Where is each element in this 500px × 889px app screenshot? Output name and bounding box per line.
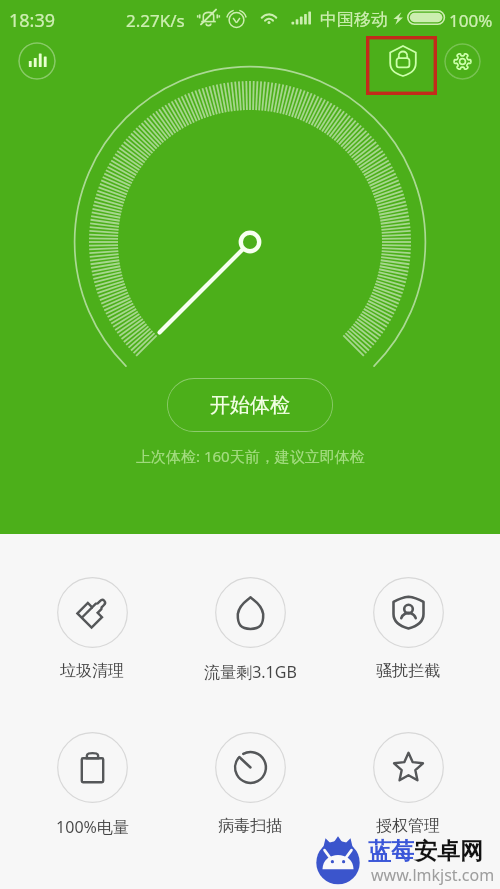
staticText: 18:39	[9, 8, 56, 33]
staticText: 垃圾清理	[60, 661, 124, 681]
staticText: 流量剩3.1GB	[204, 661, 297, 683]
staticText: 100%电量	[56, 816, 129, 838]
button[interactable]: 流量剩3.1GB	[198, 577, 302, 683]
button[interactable]: 授权管理	[356, 732, 460, 836]
staticText: 蓝莓	[368, 837, 414, 866]
button[interactable]: 骚扰拦截	[356, 577, 460, 681]
staticText: 100%	[449, 9, 493, 32]
staticText: 授权管理	[376, 816, 440, 836]
button[interactable]: 100%电量	[40, 732, 144, 838]
staticText: 骚扰拦截	[376, 661, 440, 681]
button[interactable]: 开始体检	[167, 378, 333, 432]
button[interactable]: Statistics	[18, 42, 56, 80]
staticText: 上次体检: 160天前，建议立即体检	[136, 446, 365, 466]
button[interactable]: 垃圾清理	[40, 577, 144, 681]
staticText: www.lmkjst.com	[371, 864, 495, 886]
staticText: 中国移动	[320, 9, 388, 30]
staticText: 病毒扫描	[218, 816, 282, 836]
staticText: 2.27K/s	[126, 9, 185, 32]
staticText: 安卓网	[414, 837, 483, 866]
button[interactable]: Security	[381, 39, 425, 83]
button[interactable]: 病毒扫描	[198, 732, 302, 836]
staticText: 开始体检	[210, 393, 290, 418]
button[interactable]: Settings	[444, 43, 481, 80]
